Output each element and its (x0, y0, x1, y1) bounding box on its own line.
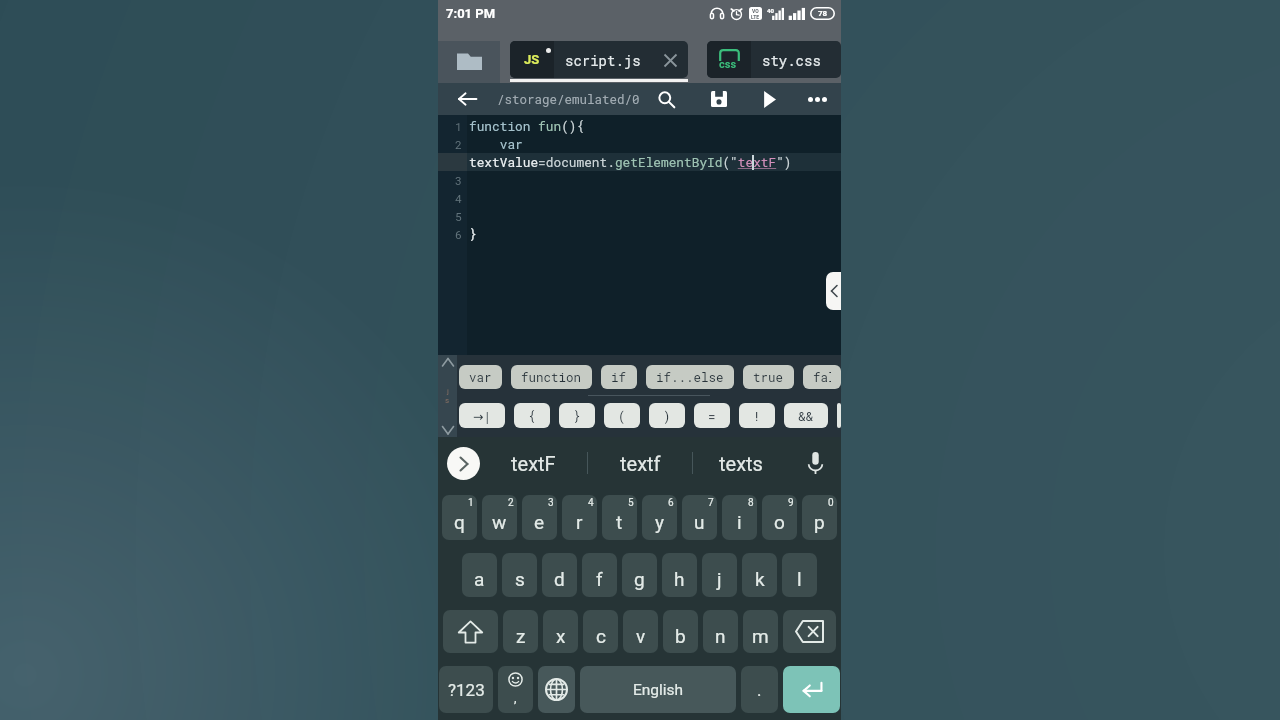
staticText: 6 (455, 227, 462, 242)
button[interactable]: ! (739, 403, 775, 428)
staticText: JS (524, 52, 540, 67)
staticText: 5 (455, 209, 462, 224)
button[interactable]: h (662, 553, 697, 597)
button[interactable]: Backspace (783, 610, 836, 653)
staticText: f (596, 568, 603, 590)
button[interactable]: Save (702, 83, 736, 115)
button[interactable]: Run (752, 83, 786, 115)
button[interactable]: z (503, 610, 538, 653)
button[interactable]: m (743, 610, 778, 653)
button[interactable]: ) (649, 403, 685, 428)
staticText: LTE (751, 14, 760, 20)
button[interactable]: u (682, 495, 717, 540)
button[interactable]: textf (588, 437, 692, 489)
staticText: w (492, 511, 507, 533)
button[interactable]: x (543, 610, 578, 653)
staticText: } (573, 408, 581, 424)
staticText: textF (511, 452, 556, 475)
button[interactable]: textF (480, 437, 587, 489)
button[interactable]: texts (693, 437, 789, 489)
button[interactable]: ( (604, 403, 640, 428)
button[interactable]: l (782, 553, 817, 597)
button[interactable]: v (623, 610, 658, 653)
button[interactable]: Enter (783, 666, 840, 713)
staticText: 9 (788, 497, 794, 509)
button[interactable]: English (580, 666, 736, 713)
button[interactable]: r (562, 495, 597, 540)
staticText: function (521, 369, 582, 385)
button[interactable]: var (459, 365, 502, 389)
staticText: x (556, 625, 566, 647)
button[interactable]: y (642, 495, 677, 540)
staticText: } (469, 226, 477, 243)
staticText: var (469, 369, 492, 385)
staticText: 1 (455, 119, 462, 134)
staticText: 7 (708, 497, 714, 509)
button[interactable]: e (522, 495, 557, 540)
button[interactable]: g (622, 553, 657, 597)
staticText: h (674, 568, 685, 590)
staticText: c (596, 625, 606, 647)
button[interactable]: Shift (443, 610, 498, 653)
staticText: s (515, 568, 525, 590)
staticText: 1 (468, 497, 474, 509)
button[interactable]: if (601, 365, 637, 389)
button[interactable]: ; (837, 403, 841, 428)
staticText: j (447, 387, 449, 396)
button[interactable]: s (502, 553, 537, 597)
button[interactable]: c (583, 610, 618, 653)
button[interactable]: css (707, 41, 841, 78)
button[interactable]: . (741, 666, 778, 713)
button[interactable]: Open side panel (826, 272, 841, 310)
button[interactable]: } (559, 403, 595, 428)
button[interactable]: k (742, 553, 777, 597)
staticText: ( (618, 408, 626, 424)
button[interactable]: d (542, 553, 577, 597)
button[interactable]: Voice input (797, 445, 833, 481)
button[interactable]: { (514, 403, 550, 428)
button[interactable]: Back (438, 83, 497, 115)
button[interactable]: n (703, 610, 738, 653)
staticText: 2 (455, 137, 462, 152)
button[interactable]: o (762, 495, 797, 540)
staticText: s (445, 396, 450, 405)
button[interactable]: p (802, 495, 837, 540)
staticText: var (469, 136, 523, 153)
button[interactable]: More options (800, 83, 834, 115)
staticText: ) (663, 408, 671, 424)
button[interactable]: true (743, 365, 794, 389)
staticText: r (576, 511, 583, 533)
button[interactable]: b (663, 610, 698, 653)
button[interactable]: Switch keyboard language (538, 666, 575, 713)
button[interactable]: JS (510, 41, 688, 78)
button[interactable]: j (702, 553, 737, 597)
button[interactable]: w (482, 495, 517, 540)
button[interactable]: Close script.js (655, 45, 685, 75)
button[interactable]: function (511, 365, 592, 389)
button[interactable]: = (694, 403, 730, 428)
staticText: y (655, 511, 664, 533)
button[interactable]: false (803, 365, 841, 389)
staticText: { (528, 408, 536, 424)
button[interactable]: File browser (438, 41, 500, 83)
button[interactable]: Search (649, 83, 683, 115)
staticText: ?123 (448, 680, 485, 700)
button[interactable]: →| (459, 403, 505, 428)
button[interactable]: i (722, 495, 757, 540)
button[interactable]: Emoji (498, 666, 533, 713)
button[interactable]: More suggestions (447, 447, 480, 480)
button[interactable]: ?123 (439, 666, 493, 713)
button[interactable]: if...else (646, 365, 734, 389)
staticText: VO (752, 8, 759, 14)
button[interactable]: a (462, 553, 497, 597)
button[interactable]: t (602, 495, 637, 540)
button[interactable]: && (784, 403, 828, 428)
staticText: 6 (668, 497, 674, 509)
staticText: if...else (656, 369, 724, 385)
staticText: script.js (565, 51, 641, 69)
staticText: 5 (628, 497, 634, 509)
staticText: →| (473, 408, 491, 424)
staticText: 0 (828, 497, 834, 509)
button[interactable]: q (442, 495, 477, 540)
button[interactable]: f (582, 553, 617, 597)
